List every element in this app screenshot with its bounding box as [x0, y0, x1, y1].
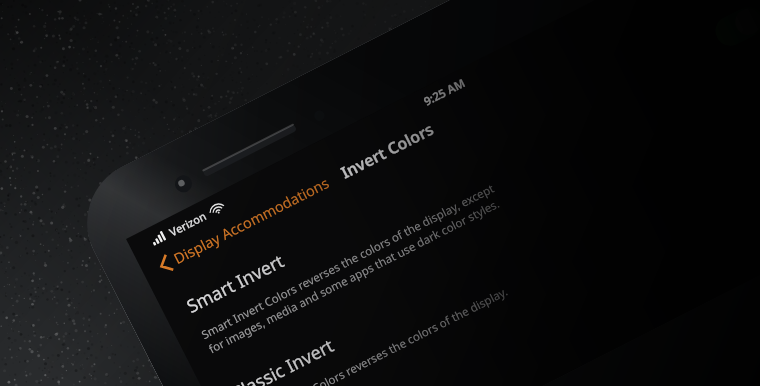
button[interactable]: Classic Invert: [203, 76, 760, 386]
button[interactable]: Display Accommodations: [150, 167, 338, 281]
staticText: Classic Invert: [227, 333, 338, 386]
staticText: Verizon: [167, 208, 209, 239]
staticText: Display Accommodations: [170, 172, 332, 268]
staticText: Invert Colors: [337, 118, 438, 184]
staticText: Smart Invert: [182, 248, 288, 319]
staticText: Smart Invert Colors reverses the colors …: [199, 180, 504, 356]
staticText: 9:25 AM: [421, 75, 468, 110]
staticText: Classic Invert Colors reverses the color…: [243, 283, 511, 386]
button[interactable]: Smart Invert: [159, 0, 760, 333]
